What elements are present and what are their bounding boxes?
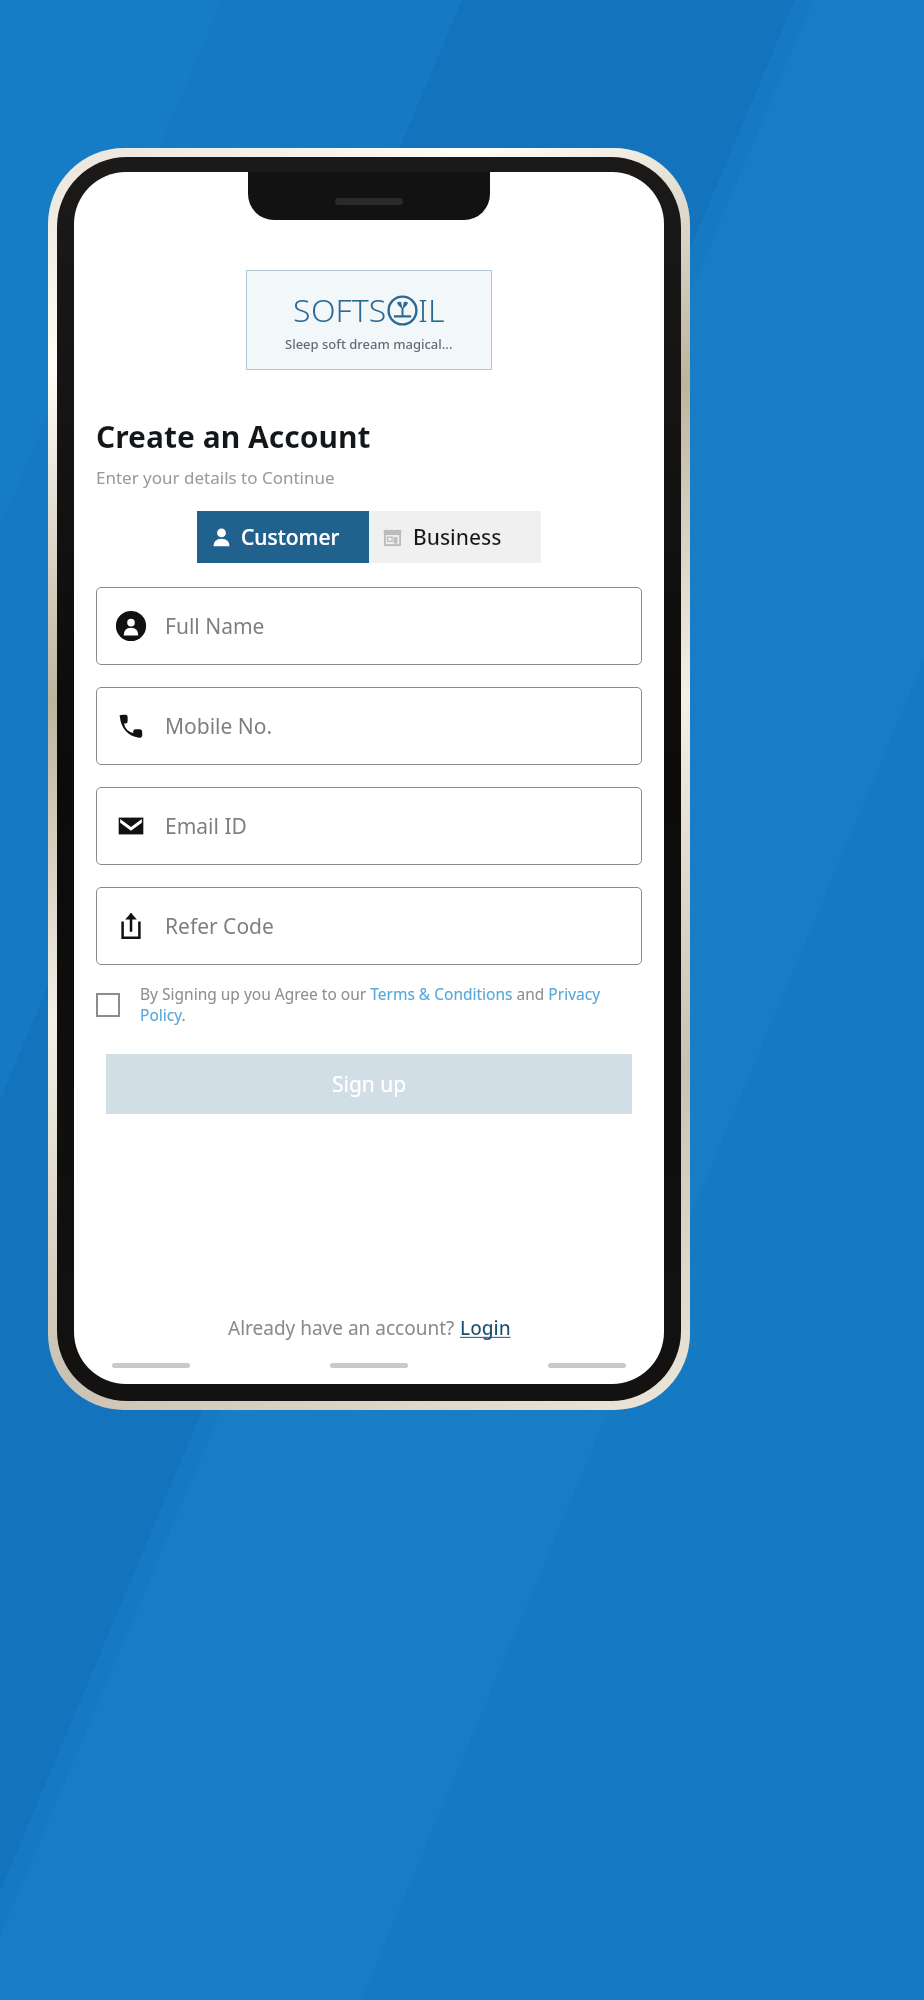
staticText: S (293, 288, 311, 332)
button[interactable]: Email ID (96, 787, 642, 865)
button[interactable]: Refer Code (96, 887, 642, 965)
staticText: Email ID (165, 812, 247, 841)
staticText: Business (413, 523, 502, 552)
staticText: Enter your details to Continue (96, 466, 335, 489)
staticText: Refer Code (165, 912, 274, 941)
staticText: Login (460, 1315, 511, 1341)
staticText: Full Name (165, 612, 265, 641)
staticText: Customer (241, 523, 340, 552)
staticText: Sign up (332, 1070, 407, 1099)
staticText: IL (418, 288, 445, 332)
button[interactable]: Login (460, 1315, 511, 1341)
button[interactable]: By Signing up you Agree to our Terms & C… (96, 983, 642, 1026)
staticText: Already have an account? (228, 1315, 460, 1341)
button[interactable]: Customer (197, 511, 369, 563)
button[interactable]: Business (369, 511, 541, 563)
staticText: Mobile No. (165, 712, 273, 741)
staticText: By Signing up you Agree to our Terms & C… (140, 983, 642, 1026)
button[interactable]: Sign up (106, 1054, 632, 1114)
staticText: OFTS (311, 288, 387, 332)
button[interactable]: Full Name (96, 587, 642, 665)
staticText: Create an Account (96, 416, 371, 457)
staticText: Sleep soft dream magical... (285, 335, 453, 353)
button[interactable]: Mobile No. (96, 687, 642, 765)
